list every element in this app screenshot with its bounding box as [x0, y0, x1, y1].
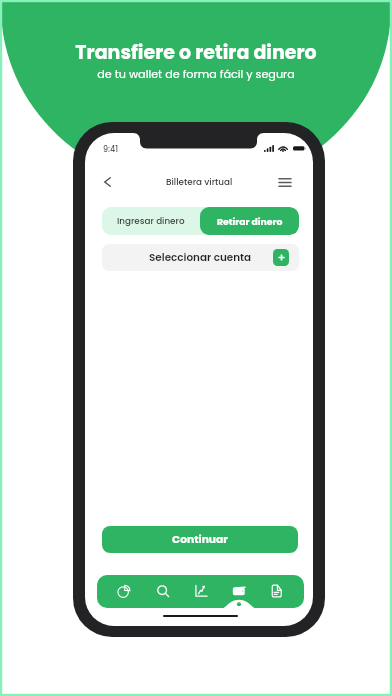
- staticText: Seleccionar cuenta: [149, 250, 252, 265]
- button[interactable]: Retirar dinero: [200, 207, 299, 235]
- staticText: de tu wallet de forma fácil y segura: [97, 66, 295, 82]
- button[interactable]: Seleccionar cuenta: [102, 244, 299, 271]
- button[interactable]: Documents: [262, 577, 292, 604]
- button[interactable]: Statistics: [109, 577, 139, 604]
- staticText: Retirar dinero: [217, 215, 283, 228]
- button[interactable]: Trends: [186, 577, 216, 604]
- staticText: Transfiere o retira dinero: [75, 39, 317, 66]
- button[interactable]: Wallet: [224, 577, 254, 604]
- staticText: Continuar: [172, 532, 228, 547]
- staticText: Billetera virtual: [166, 176, 233, 188]
- button[interactable]: Menu: [274, 171, 296, 193]
- staticText: 9:41: [103, 144, 119, 155]
- button[interactable]: Add account: [273, 249, 289, 266]
- button[interactable]: Ingresar dinero: [102, 207, 200, 235]
- button[interactable]: Back: [96, 171, 118, 193]
- staticText: Ingresar dinero: [117, 215, 185, 227]
- button[interactable]: Continuar: [102, 526, 298, 553]
- button[interactable]: Search: [148, 577, 178, 604]
